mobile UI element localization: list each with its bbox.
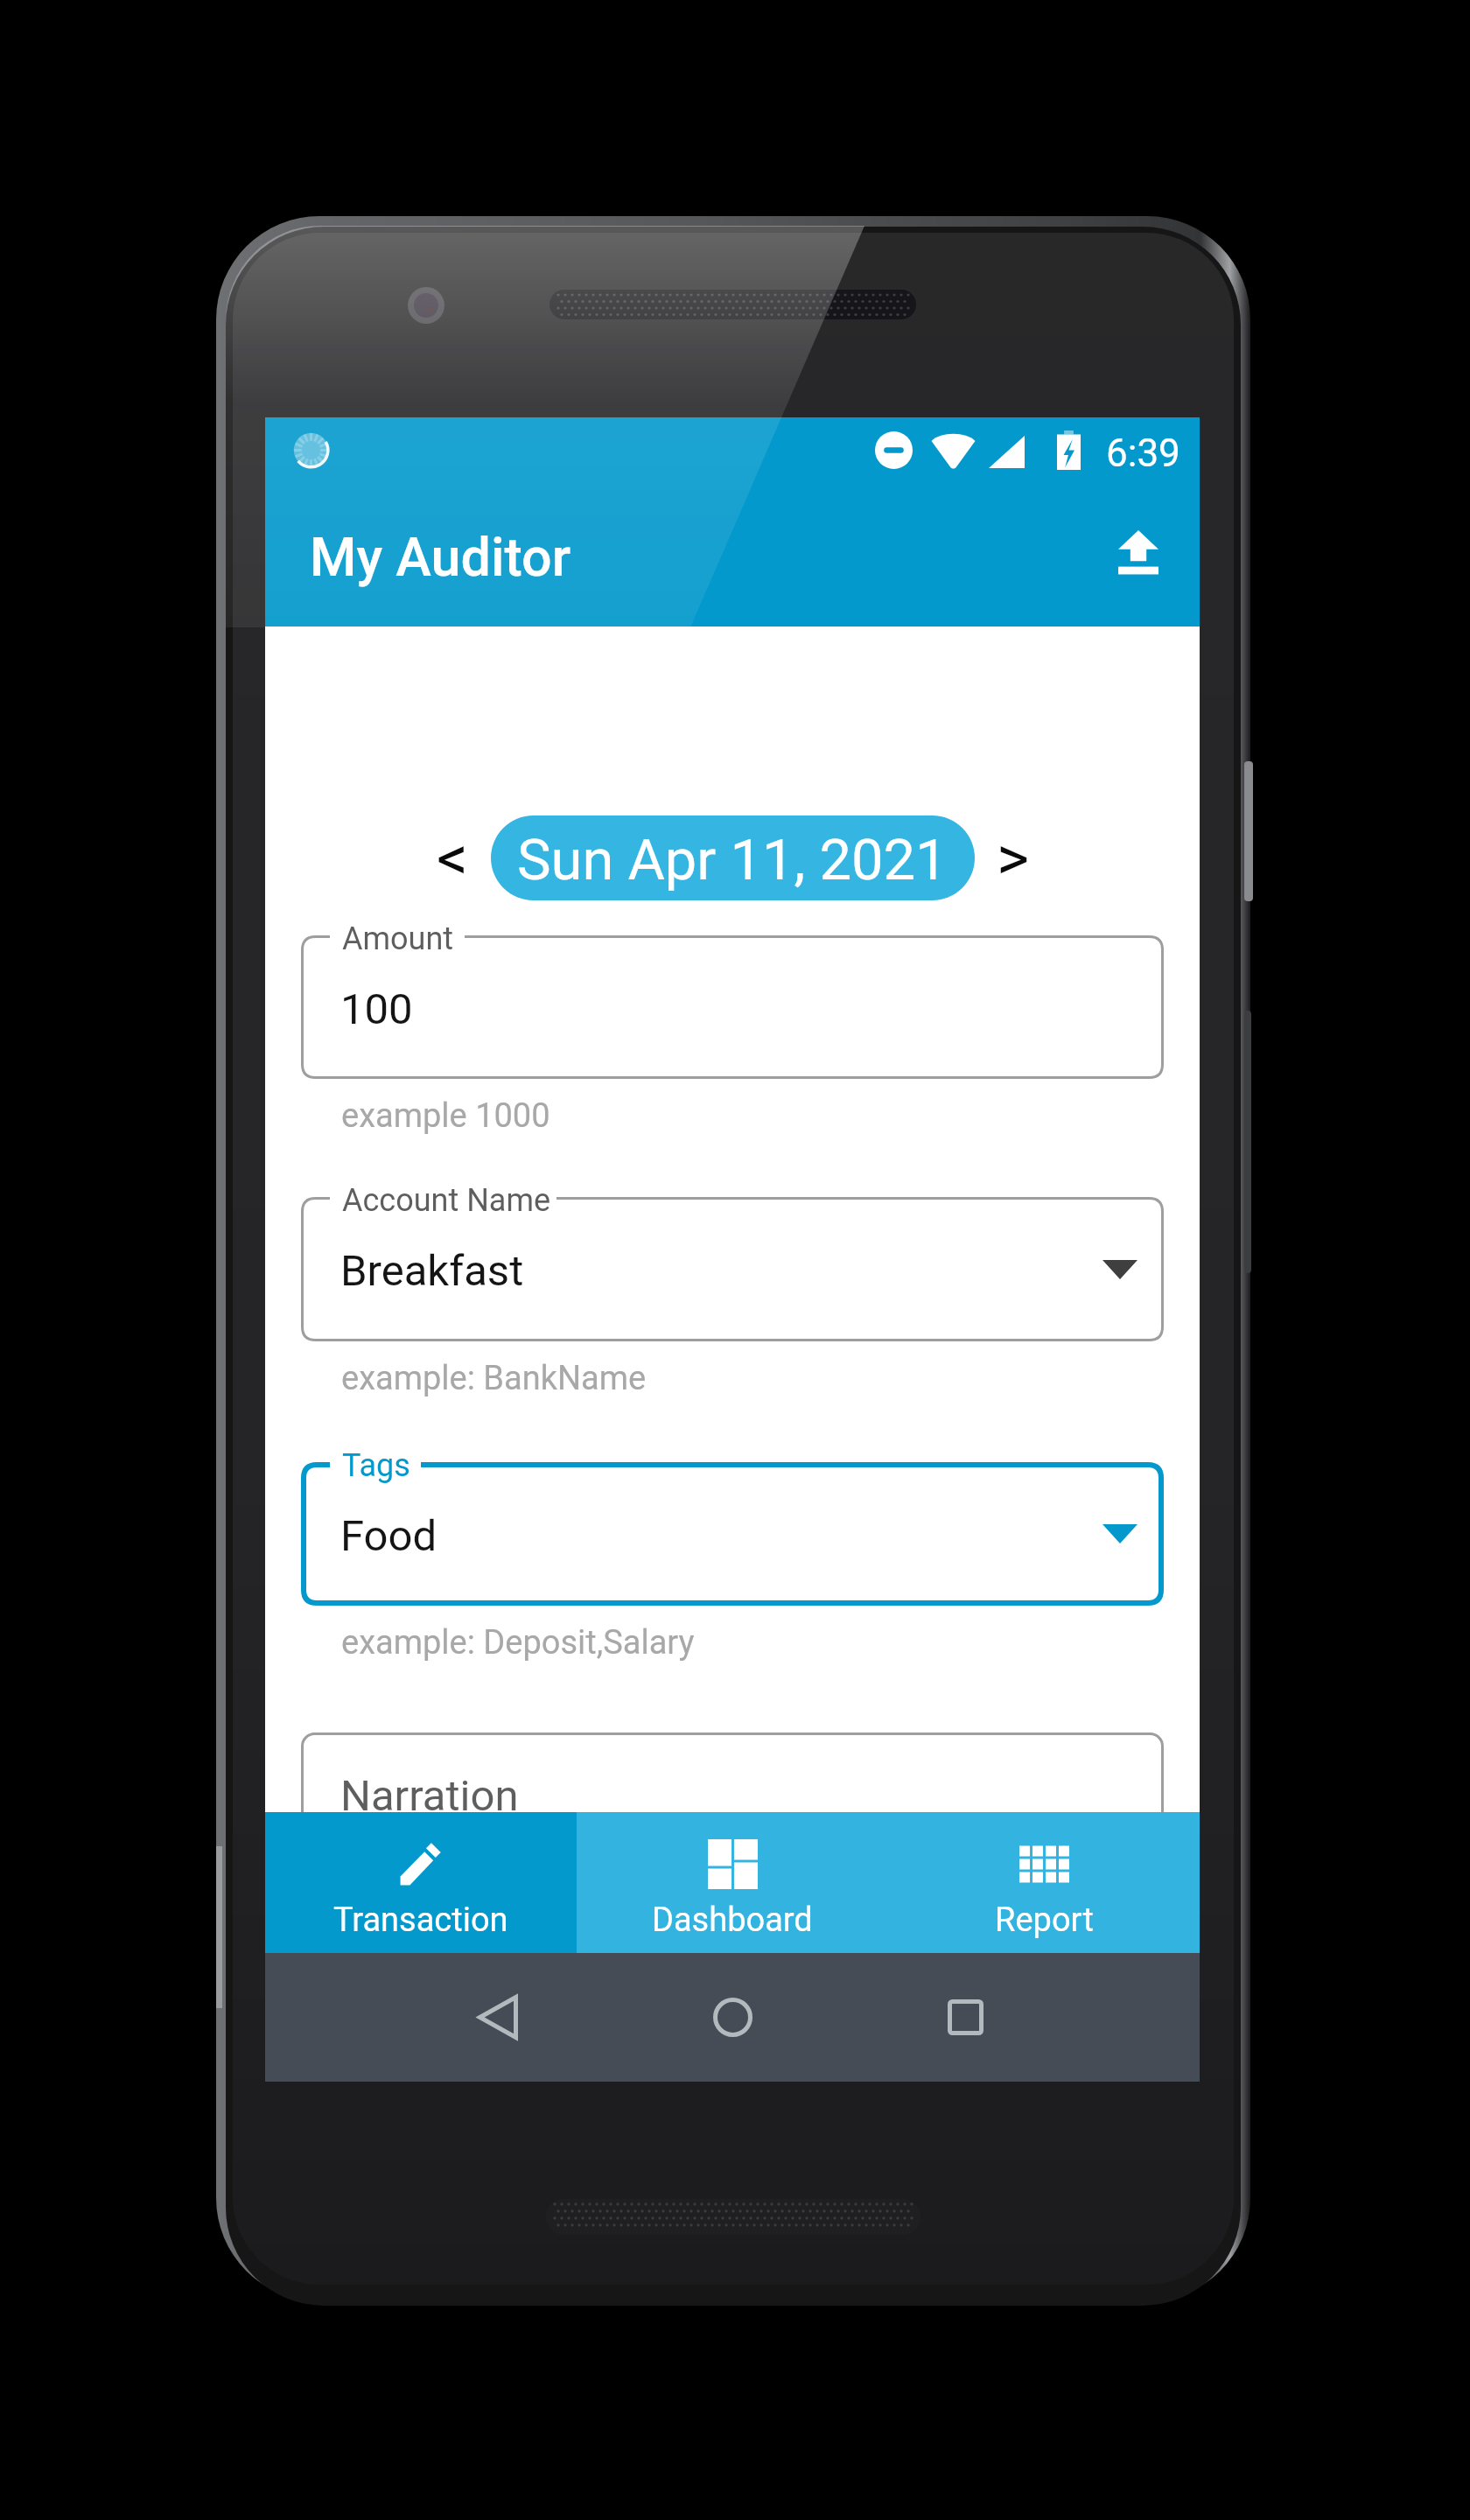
staticText: Sun Apr 11, 2021 bbox=[517, 827, 948, 893]
button[interactable]: Transaction bbox=[265, 1812, 577, 1953]
staticText: Breakfast bbox=[340, 1246, 524, 1296]
button[interactable]: Breakfast bbox=[301, 1197, 1164, 1341]
staticText: Narration bbox=[340, 1771, 519, 1821]
staticText: 100 bbox=[340, 984, 413, 1034]
staticText: My Auditor bbox=[310, 526, 571, 588]
staticText: 6:39 bbox=[1106, 430, 1180, 476]
button[interactable]: Sun Apr 11, 2021 bbox=[491, 815, 975, 900]
button[interactable]: Report bbox=[888, 1812, 1200, 1953]
staticText: example 1000 bbox=[341, 1096, 550, 1136]
staticText: example: BankName bbox=[341, 1359, 647, 1398]
button[interactable]: Food bbox=[301, 1462, 1164, 1606]
staticText: example: Deposit,Salary bbox=[341, 1623, 695, 1662]
button[interactable]: Dashboard bbox=[577, 1812, 888, 1953]
staticText: < bbox=[437, 822, 469, 894]
button[interactable]: Home bbox=[680, 1953, 785, 2082]
staticText: Food bbox=[340, 1511, 437, 1561]
button[interactable]: 100 bbox=[301, 935, 1164, 1079]
button[interactable]: Next day bbox=[975, 815, 1052, 900]
staticText: Amount bbox=[342, 920, 454, 957]
button[interactable]: Previous day bbox=[414, 815, 491, 900]
staticText: Report bbox=[995, 1900, 1094, 1940]
button[interactable]: Upload bbox=[1096, 511, 1180, 595]
button[interactable]: Back bbox=[445, 1953, 550, 2082]
staticText: Account Name bbox=[342, 1182, 551, 1219]
button[interactable]: Recents bbox=[913, 1953, 1018, 2082]
staticText: Dashboard bbox=[652, 1900, 813, 1940]
staticText: Transaction bbox=[333, 1900, 508, 1940]
staticText: Tags bbox=[342, 1447, 410, 1484]
staticText: > bbox=[997, 822, 1030, 894]
